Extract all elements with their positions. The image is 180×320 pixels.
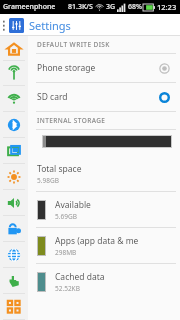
staticText: Available [55, 199, 91, 211]
staticText: DEFAULT WRITE DISK [37, 40, 110, 49]
staticText: INTERNAL STORAGE [37, 116, 106, 125]
button[interactable]: sound [0, 190, 28, 216]
button[interactable]: home [0, 36, 28, 61]
staticText: Cached data [55, 271, 105, 283]
staticText: 5.98GB [37, 176, 59, 185]
other: Settings icon [9, 18, 24, 33]
staticText: 298MB [55, 248, 77, 257]
button[interactable]: Total space [28, 156, 180, 191]
staticText: 52.52KB [55, 284, 80, 293]
button[interactable]: sun [0, 164, 28, 190]
staticText: 3G [106, 2, 116, 12]
button[interactable]: Available [28, 192, 180, 227]
staticText: SD card [37, 91, 68, 103]
button[interactable]: globe [0, 242, 28, 268]
button[interactable]: Cached data [28, 264, 180, 299]
staticText: Grameenphone [3, 2, 56, 12]
staticText: Settings [29, 18, 71, 33]
button[interactable]: bt [0, 112, 28, 138]
button[interactable]: qr [0, 294, 28, 320]
staticText: Phone storage [37, 62, 96, 74]
staticText: 81.3K/S [68, 2, 93, 12]
staticText: Total space [37, 163, 82, 175]
staticText: Apps (app data & me [55, 235, 139, 247]
staticText: 12:23 [157, 2, 177, 12]
button[interactable]: Phone storage [28, 54, 180, 82]
button[interactable]: screen [0, 138, 28, 164]
button[interactable]: wifi [0, 86, 28, 112]
button[interactable]: tower [0, 61, 28, 86]
button[interactable]: hand [0, 268, 28, 294]
button[interactable]: Menu [0, 14, 9, 36]
button[interactable]: lock [0, 216, 28, 242]
staticText: 68% [128, 2, 142, 12]
button[interactable]: Apps (app data & me [28, 228, 180, 263]
staticText: 5.69GB [55, 212, 77, 221]
button[interactable]: SD card [28, 83, 180, 111]
